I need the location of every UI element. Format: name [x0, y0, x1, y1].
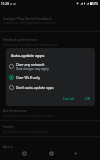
- button[interactable]: Over Wi-Fi only: [6, 72, 95, 83]
- staticText: Google Play Store Feedback: [3, 16, 52, 21]
- staticText: Data usage for apps, Auto-update apps: [3, 43, 59, 47]
- button[interactable]: Family: [0, 124, 100, 134]
- staticText: Over Wi-Fi only: [16, 75, 40, 80]
- staticText: OK: [85, 96, 90, 101]
- staticText: Comments and suggestions welcome: [3, 21, 56, 25]
- button[interactable]: Network preferences: [0, 37, 100, 47]
- staticText: Authentication: [3, 108, 28, 113]
- staticText: Family: [3, 124, 14, 129]
- button[interactable]: About: [0, 144, 100, 149]
- button[interactable]: Over any network: [6, 61, 95, 72]
- button[interactable]: OK: [83, 94, 92, 103]
- staticText: Network preferences: [3, 37, 38, 42]
- button[interactable]: Home: [46, 148, 57, 159]
- button[interactable]: Don't auto-update apps: [6, 82, 95, 93]
- staticText: Auto-update apps: [11, 53, 45, 58]
- staticText: Don't auto-update apps: [16, 85, 54, 90]
- staticText: Over any network: [16, 62, 45, 67]
- staticText: 11:28: [1, 2, 9, 6]
- staticText: Fingerprint, purchase authentication: [3, 114, 55, 118]
- staticText: 53%: [92, 2, 98, 6]
- staticText: Data charges may apply: [16, 67, 49, 71]
- button[interactable]: Authentication: [0, 108, 100, 118]
- staticText: About: [3, 144, 13, 149]
- staticText: Cancel: [63, 96, 75, 101]
- button[interactable]: Recent apps: [19, 148, 30, 159]
- button[interactable]: Cancel: [61, 94, 77, 103]
- button[interactable]: Back: [70, 148, 81, 159]
- staticText: Parental controls, parental guide: [3, 130, 50, 134]
